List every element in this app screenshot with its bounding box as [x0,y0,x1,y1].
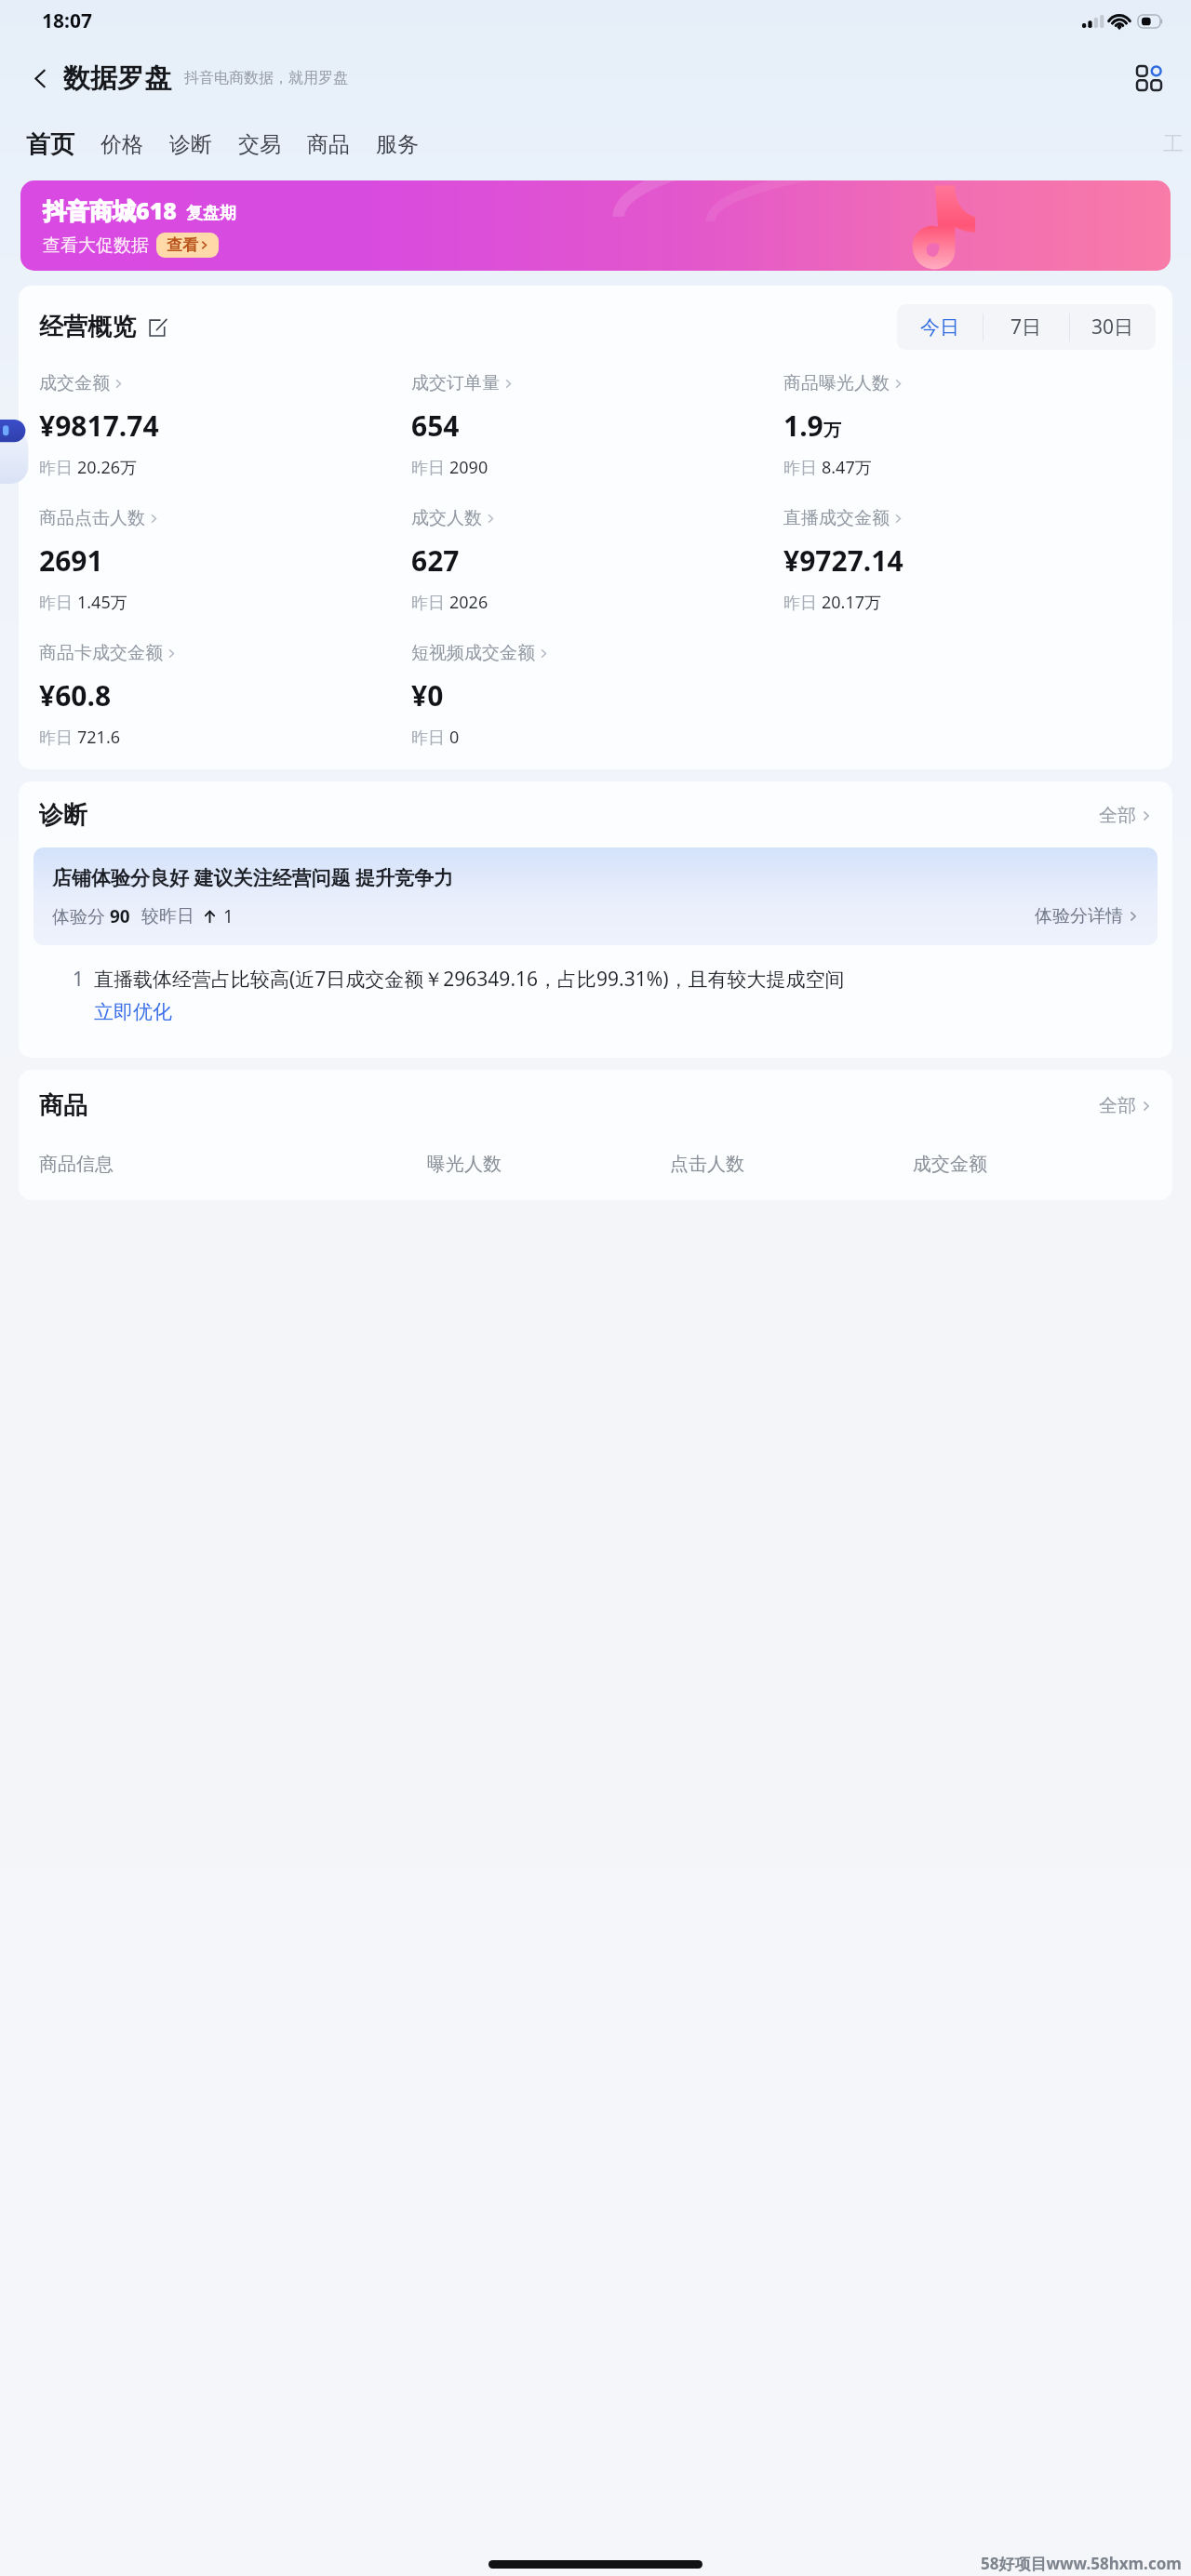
staticText: 首页 [26,129,74,160]
button[interactable]: 全部 [1099,1094,1152,1117]
staticText: 短视频成交金额 [411,642,535,664]
staticText: 昨日 [39,456,77,479]
staticText: 商品 [39,1090,87,1121]
button[interactable]: 今日 [897,304,983,350]
staticText: 全部 [1099,1094,1136,1117]
staticText: 成交金额 [39,372,110,394]
staticText: 2090 [449,456,488,479]
staticText: 点击人数 [670,1153,913,1176]
staticText: 2691 [39,541,103,580]
staticText: 昨日 [39,591,77,614]
button[interactable]: 价格 [100,131,143,158]
staticText: 体验分 [52,904,110,928]
staticText: 商品点击人数 [39,507,145,529]
button[interactable]: 诊断 [169,131,212,158]
button[interactable]: 首页 [26,129,74,160]
staticText: 昨日 [411,726,449,749]
button[interactable]: Edit [145,315,169,340]
button[interactable]: 店铺体验分良好 建议关注经营问题 提升竞争力 [52,864,1139,928]
button[interactable]: 查看 [167,235,208,255]
staticText: 店铺体验分良好 建议关注经营问题 提升竞争力 [52,864,453,891]
button[interactable]: 30日 [1070,304,1156,350]
staticText: 复盘期 [186,203,236,224]
staticText: 查看大促数据 [43,234,149,257]
staticText: 30日 [1091,314,1134,340]
staticText: 抖音电商数据，就用罗盘 [184,69,348,87]
staticText: 0 [449,726,460,749]
staticText: 直播成交金额 [783,507,890,529]
staticText: 查看 [167,235,198,255]
staticText: 万 [823,420,841,442]
staticText: 商品 [307,131,350,158]
staticText: 直播载体经营占比较高(近7日成交金额￥296349.16，占比99.31%)，且… [94,966,845,993]
staticText: 1 [223,904,234,928]
staticText: 1 [73,966,85,993]
staticText: 7日 [1010,314,1042,340]
staticText: 721.6 [77,726,121,749]
staticText: 成交金额 [913,1153,1156,1176]
staticText: 诊断 [169,131,212,158]
staticText: 昨日 [39,726,77,749]
button[interactable]: Back [19,57,61,100]
staticText: 经营概览 [39,312,136,342]
staticText: 全部 [1099,804,1136,827]
staticText: 58好项目www.58hxm.com [981,2553,1182,2574]
staticText: 诊断 [39,800,87,831]
staticText: 商品卡成交金额 [39,642,163,664]
staticText: ¥9727.14 [783,541,903,580]
staticText: 627 [411,541,460,580]
staticText: 90 [110,904,130,928]
button[interactable]: 全部 [1099,804,1152,827]
staticText: 商品信息 [39,1153,427,1176]
staticText: 今日 [920,315,959,340]
staticText: 交易 [238,131,281,158]
staticText: 1.45万 [77,591,127,614]
staticText: 较昨日 [141,905,194,928]
staticText: ¥0 [411,676,444,714]
staticText: 曝光人数 [427,1153,670,1176]
staticText: 1.9 [783,407,823,445]
staticText: 价格 [100,131,143,158]
staticText: 立即优化 [94,1000,172,1024]
button[interactable]: 7日 [984,304,1069,350]
staticText: 8.47万 [822,456,872,479]
staticText: 体验分详情 [1035,905,1123,928]
staticText: 工 [1163,131,1184,157]
staticText: 18:07 [42,7,92,34]
staticText: 抖音商城618 [43,194,177,226]
button[interactable]: 抖音商城618 [20,180,1171,271]
staticText: 成交订单量 [411,372,500,394]
staticText: ¥9817.74 [39,407,159,445]
button[interactable]: 立即优化 [94,1000,172,1024]
button[interactable]: 交易 [238,131,281,158]
button[interactable]: Apps [1126,55,1172,101]
staticText: 昨日 [411,456,449,479]
staticText: ¥60.8 [39,676,112,714]
staticText: 654 [411,407,460,445]
staticText: 20.17万 [822,591,882,614]
button[interactable]: 商品 [307,131,350,158]
staticText: 昨日 [411,591,449,614]
staticText: 服务 [376,131,419,158]
staticText: 昨日 [783,456,822,479]
staticText: 成交人数 [411,507,482,529]
staticText: 数据罗盘 [63,61,171,96]
staticText: 昨日 [783,591,822,614]
staticText: 商品曝光人数 [783,372,890,394]
staticText: 2026 [449,591,488,614]
staticText: 20.26万 [77,456,138,479]
button[interactable]: 服务 [376,131,419,158]
